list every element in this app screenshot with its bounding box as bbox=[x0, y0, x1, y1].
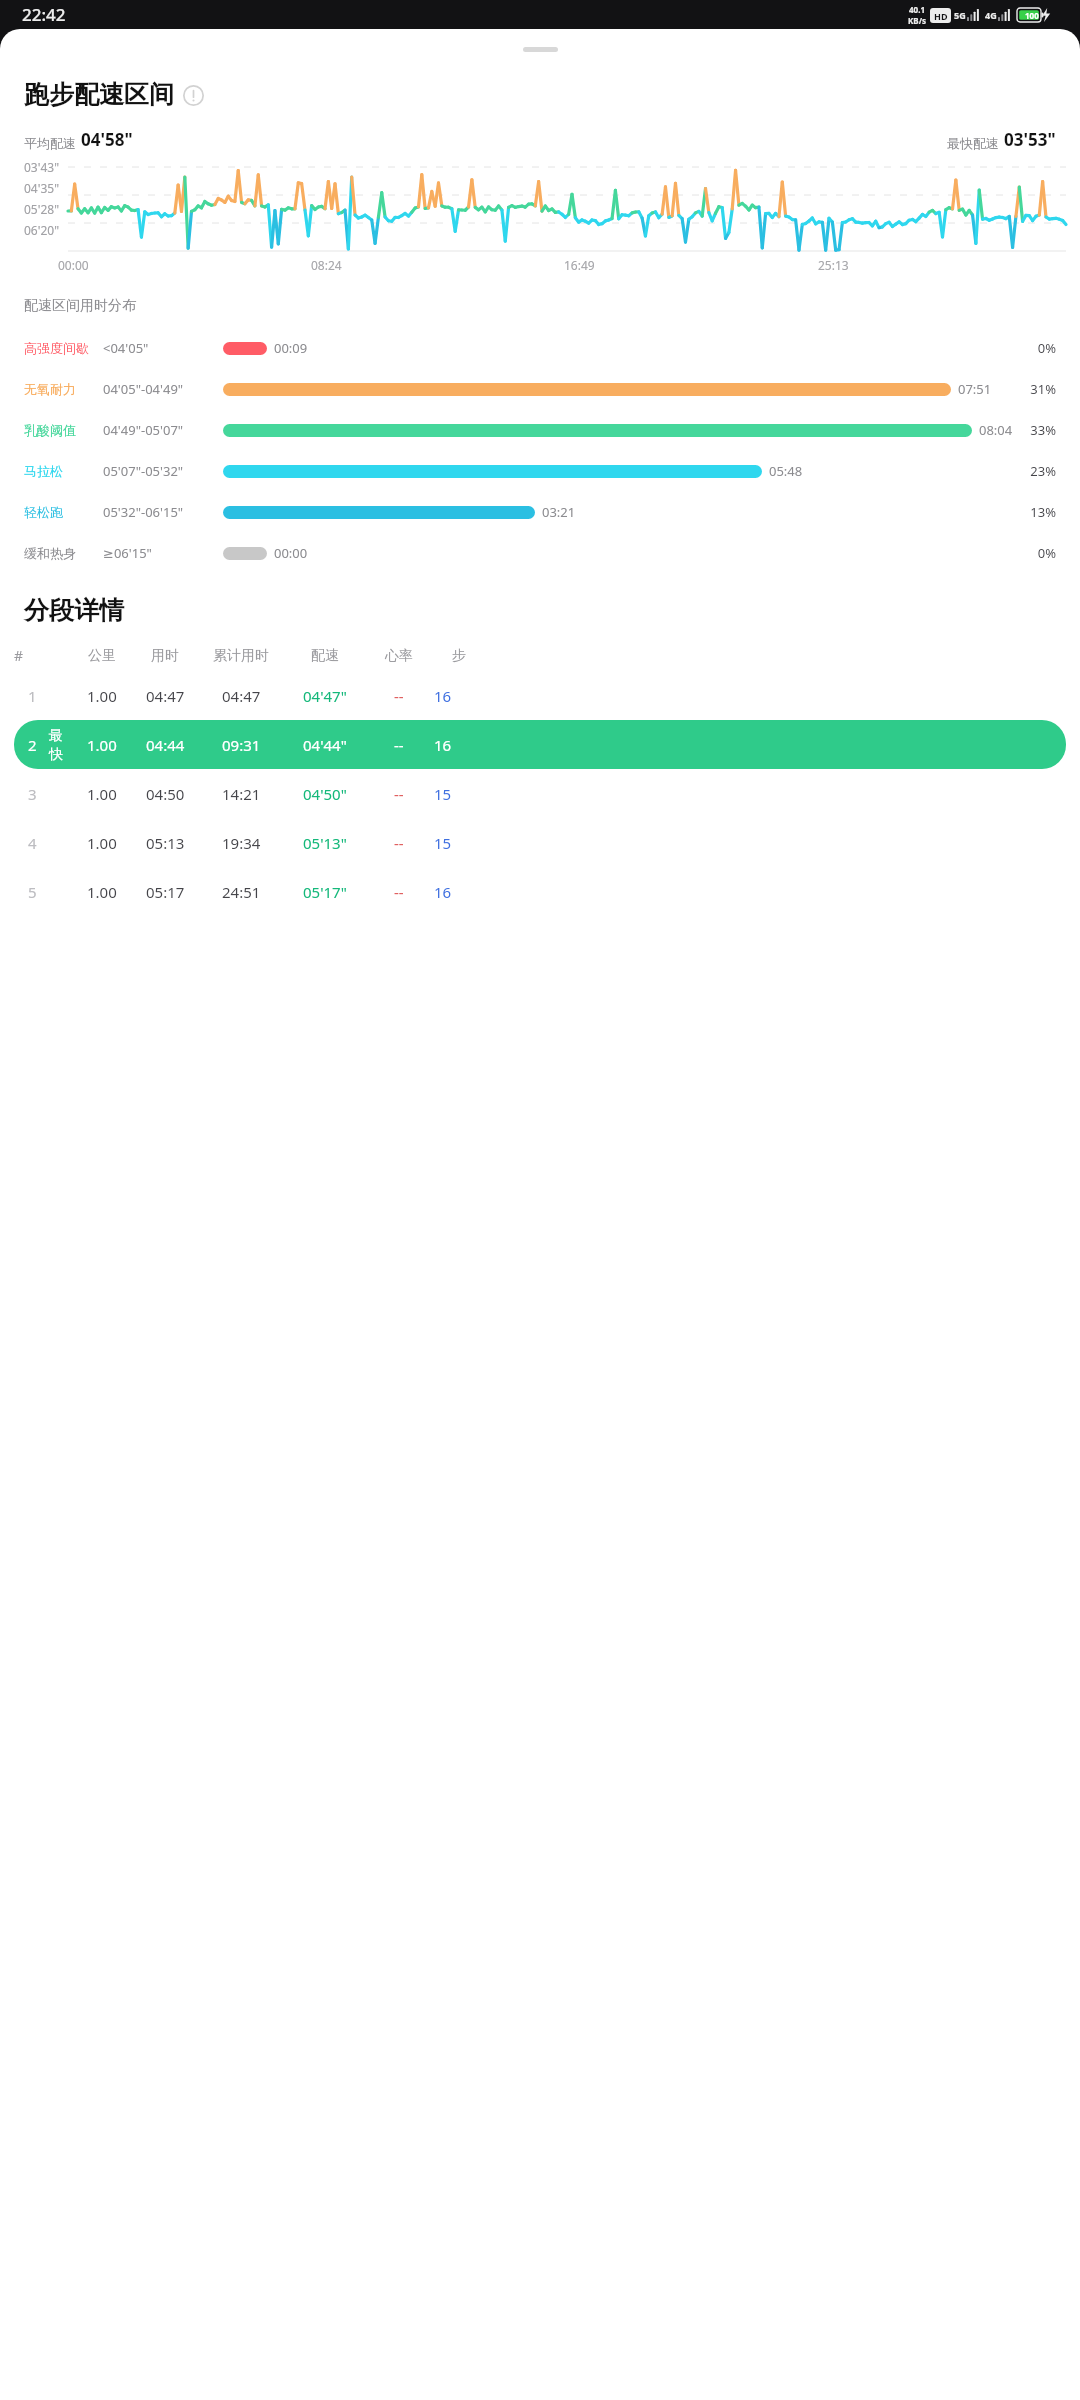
staticText: 14:21 bbox=[222, 784, 261, 804]
staticText: -- bbox=[394, 833, 404, 853]
staticText: 05:13 bbox=[146, 833, 185, 853]
staticText: 心率 bbox=[385, 647, 413, 665]
staticText: 07:51 bbox=[958, 380, 992, 398]
staticText: 16 bbox=[434, 735, 452, 755]
staticText: -- bbox=[394, 735, 404, 755]
staticText: 05'32"-06'15" bbox=[103, 503, 223, 521]
staticText: 05:17 bbox=[146, 882, 185, 902]
staticText: 40.1 bbox=[909, 4, 925, 15]
button[interactable]: 缓和热身 bbox=[0, 532, 1080, 573]
staticText: 16:49 bbox=[564, 257, 595, 273]
staticText: 04'05"-04'49" bbox=[103, 380, 223, 398]
staticText: HD bbox=[934, 10, 948, 22]
staticText: 04'35" bbox=[24, 180, 60, 196]
staticText: -- bbox=[394, 686, 404, 706]
staticText: 最快配速 bbox=[947, 135, 999, 151]
staticText: 1.00 bbox=[87, 833, 117, 853]
staticText: 1.00 bbox=[87, 735, 117, 755]
staticText: 23% bbox=[1016, 462, 1056, 480]
staticText: 03'53" bbox=[1004, 128, 1056, 151]
staticText: 16 bbox=[434, 882, 452, 902]
staticText: 05'28" bbox=[24, 201, 60, 217]
staticText: 04'58" bbox=[81, 128, 133, 151]
staticText: 1.00 bbox=[87, 882, 117, 902]
staticText: -- bbox=[394, 882, 404, 902]
staticText: 04'44" bbox=[303, 735, 347, 755]
staticText: 5 bbox=[28, 882, 37, 902]
staticText: 05'07"-05'32" bbox=[103, 462, 223, 480]
staticText: <04'05" bbox=[103, 339, 223, 357]
staticText: 0% bbox=[1016, 544, 1056, 562]
button[interactable]: 说明 bbox=[181, 83, 205, 107]
staticText: 05'17" bbox=[303, 882, 347, 902]
staticText: 最快 bbox=[49, 727, 70, 763]
staticText: 无氧耐力 bbox=[24, 381, 103, 397]
staticText: 15 bbox=[434, 784, 452, 804]
button[interactable]: 高强度间歇 bbox=[0, 327, 1080, 368]
staticText: 15 bbox=[434, 833, 452, 853]
staticText: 缓和热身 bbox=[24, 545, 103, 561]
staticText: 24:51 bbox=[222, 882, 261, 902]
staticText: 平均配速 bbox=[24, 135, 76, 151]
button[interactable]: 轻松跑 bbox=[0, 491, 1080, 532]
staticText: 33% bbox=[1016, 421, 1056, 439]
staticText: 04:50 bbox=[146, 784, 185, 804]
staticText: 05:48 bbox=[769, 462, 803, 480]
staticText: 分段详情 bbox=[24, 595, 124, 626]
staticText: 08:24 bbox=[311, 257, 342, 273]
staticText: 04'47" bbox=[303, 686, 347, 706]
staticText: 1.00 bbox=[87, 686, 117, 706]
staticText: 累计用时 bbox=[213, 647, 269, 665]
button[interactable]: 乳酸阈值 bbox=[0, 409, 1080, 450]
button[interactable]: 1 bbox=[14, 671, 1066, 720]
staticText: 03:21 bbox=[542, 503, 576, 521]
button[interactable]: 马拉松 bbox=[0, 450, 1080, 491]
staticText: 4G bbox=[985, 9, 997, 21]
staticText: 4 bbox=[28, 833, 37, 853]
staticText: 配速 bbox=[311, 647, 339, 665]
staticText: 100 bbox=[1025, 10, 1039, 21]
staticText: 高强度间歇 bbox=[24, 340, 103, 356]
staticText: 配速区间用时分布 bbox=[24, 297, 136, 315]
staticText: 08:04 bbox=[979, 421, 1013, 439]
staticText: KB/s bbox=[908, 15, 926, 26]
staticText: 用时 bbox=[151, 647, 179, 665]
staticText: 04:44 bbox=[146, 735, 185, 755]
staticText: 06'20" bbox=[24, 222, 60, 238]
staticText: 00:00 bbox=[274, 544, 308, 562]
staticText: 00:00 bbox=[58, 257, 89, 273]
staticText: 跑步配速区间 bbox=[24, 79, 174, 110]
staticText: 22:42 bbox=[22, 3, 66, 26]
staticText: 16 bbox=[434, 686, 452, 706]
staticText: 03'43" bbox=[24, 159, 60, 175]
staticText: 04'50" bbox=[303, 784, 347, 804]
staticText: 19:34 bbox=[222, 833, 261, 853]
staticText: 公里 bbox=[88, 647, 116, 665]
staticText: 00:09 bbox=[274, 339, 308, 357]
button[interactable]: 3 bbox=[14, 769, 1066, 818]
staticText: 05'13" bbox=[303, 833, 347, 853]
staticText: ≥06'15" bbox=[103, 544, 223, 562]
staticText: 马拉松 bbox=[24, 463, 103, 479]
button[interactable]: 4 bbox=[14, 818, 1066, 867]
staticText: 5G bbox=[954, 9, 966, 21]
staticText: -- bbox=[394, 784, 404, 804]
staticText: 04:47 bbox=[222, 686, 261, 706]
button[interactable]: 5 bbox=[14, 867, 1066, 916]
staticText: 25:13 bbox=[818, 257, 849, 273]
button[interactable]: 2 bbox=[14, 720, 1066, 769]
button[interactable]: 无氧耐力 bbox=[0, 368, 1080, 409]
staticText: 3 bbox=[28, 784, 37, 804]
staticText: 乳酸阈值 bbox=[24, 422, 103, 438]
staticText: 0% bbox=[1016, 339, 1056, 357]
staticText: 04:47 bbox=[146, 686, 185, 706]
staticText: # bbox=[14, 646, 24, 665]
staticText: 31% bbox=[1016, 380, 1056, 398]
staticText: 轻松跑 bbox=[24, 504, 103, 520]
staticText: 1.00 bbox=[87, 784, 117, 804]
staticText: 2 bbox=[28, 735, 37, 755]
staticText: 13% bbox=[1016, 503, 1056, 521]
staticText: 04'49"-05'07" bbox=[103, 421, 223, 439]
staticText: 步 bbox=[452, 647, 466, 665]
staticText: 09:31 bbox=[222, 735, 261, 755]
